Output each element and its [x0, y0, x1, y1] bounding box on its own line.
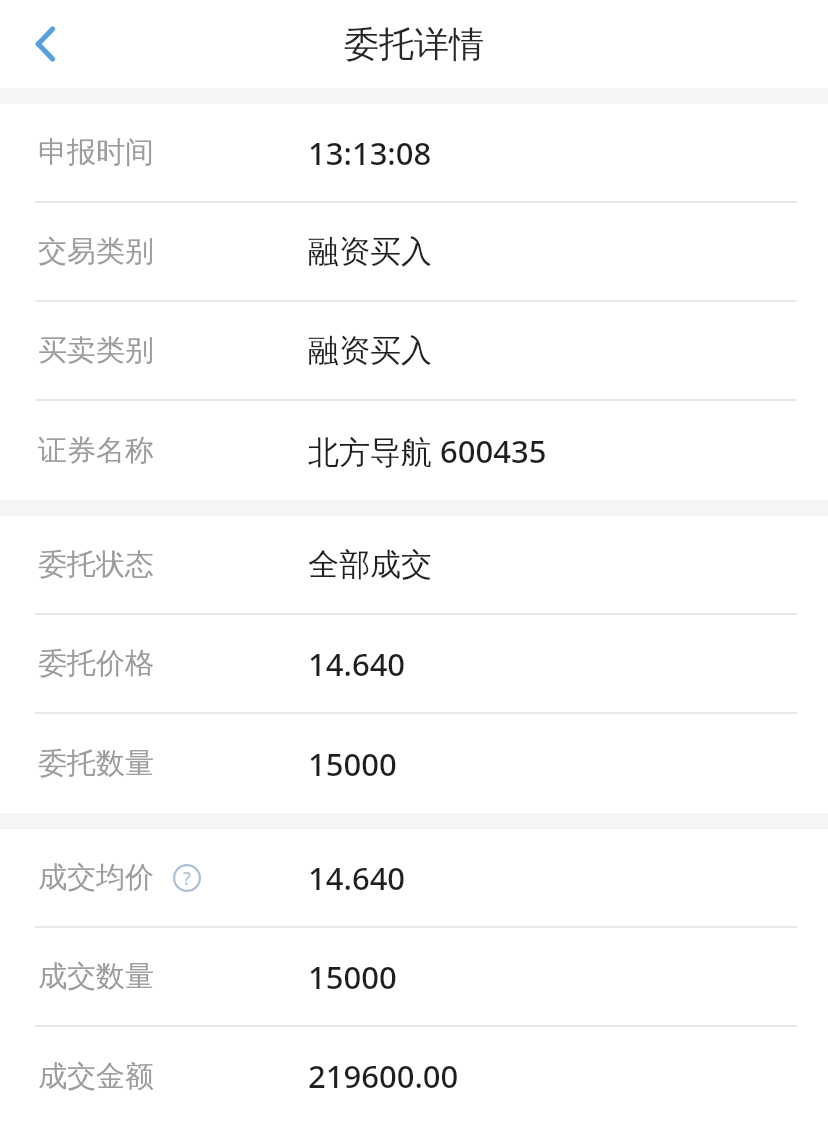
staticText: 交易类别 — [38, 233, 154, 270]
staticText: 委托价格 — [38, 645, 154, 682]
staticText: 证券名称 — [38, 432, 154, 469]
staticText: 融资买入 — [308, 232, 432, 271]
staticText: 15000 — [308, 956, 397, 998]
staticText: 成交数量 — [38, 958, 154, 995]
button[interactable]: 交易类别 — [0, 203, 828, 300]
staticText: 13:13:08 — [308, 132, 432, 174]
button[interactable]: 申报时间 — [0, 104, 828, 201]
button[interactable]: 成交金额 — [0, 1027, 828, 1125]
staticText: ? — [183, 866, 191, 891]
staticText: 委托详情 — [344, 22, 484, 66]
button[interactable]: 委托价格 — [0, 615, 828, 712]
staticText: 成交均价 — [38, 859, 154, 896]
button[interactable]: 证券名称 — [0, 401, 828, 500]
button[interactable]: 委托数量 — [0, 714, 828, 813]
staticText: 14.640 — [308, 857, 406, 899]
staticText: 申报时间 — [38, 134, 154, 171]
staticText: 15000 — [308, 743, 397, 785]
staticText: 成交金额 — [38, 1058, 154, 1095]
staticText: 北方导航 600435 — [308, 430, 547, 472]
staticText: 14.640 — [308, 643, 406, 685]
staticText: 219600.00 — [308, 1055, 459, 1097]
button[interactable]: 买卖类别 — [0, 302, 828, 399]
button[interactable]: 成交均价 — [0, 829, 828, 926]
button[interactable]: Help about average price — [172, 863, 202, 893]
button[interactable]: Back — [14, 12, 78, 76]
staticText: 委托数量 — [38, 745, 154, 782]
staticText: 融资买入 — [308, 331, 432, 370]
button[interactable]: 委托状态 — [0, 516, 828, 613]
button[interactable]: 成交数量 — [0, 928, 828, 1025]
staticText: 委托状态 — [38, 546, 154, 583]
staticText: 买卖类别 — [38, 332, 154, 369]
staticText: 全部成交 — [308, 545, 432, 584]
